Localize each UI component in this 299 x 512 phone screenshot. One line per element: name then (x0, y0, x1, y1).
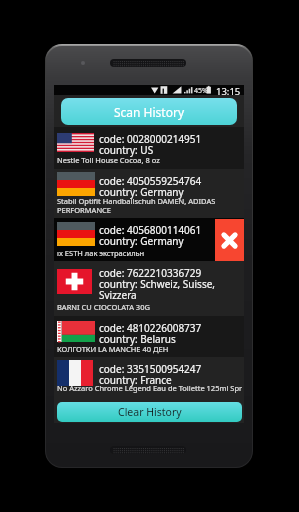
staticText: country: Germany (99, 234, 184, 248)
staticText: 13:15 (216, 85, 241, 95)
button[interactable]: code: 4810226008737 (54, 316, 244, 357)
button[interactable]: Delete entry (215, 219, 244, 261)
button[interactable]: code: 4056800114061 (54, 218, 244, 261)
staticText: Stabil Optifit Handballschuh DAMEN, ADID… (57, 196, 216, 206)
staticText: 45% (194, 86, 208, 96)
staticText: country: US (99, 143, 154, 157)
staticText: No Azzaro Chrome Legend Eau de Toilette … (57, 383, 243, 393)
staticText: code: 4056800114061 (99, 223, 202, 237)
staticText: code: 3351500954247 (99, 362, 202, 376)
staticText: Svizzera (99, 288, 137, 302)
staticText: country: France (99, 373, 172, 387)
button[interactable]: code: 3351500954247 (54, 357, 244, 396)
staticText: country: Germany (99, 185, 184, 199)
staticText: code: 0028000214951 (99, 132, 202, 146)
staticText: Nestle Toll House Cocoa, 8 oz (57, 155, 160, 165)
staticText: code: 4810226008737 (99, 321, 202, 335)
staticText: code: 7622210336729 (99, 266, 202, 280)
staticText: country: Belarus (99, 332, 176, 346)
staticText: Scan History (114, 104, 185, 120)
staticText: Clear History (118, 405, 182, 419)
button[interactable]: Clear History (57, 402, 242, 422)
button[interactable]: code: 0028000214951 (54, 127, 244, 169)
staticText: BARNI CU CIOCOLATA 30G (57, 302, 150, 312)
staticText: code: 4050559254764 (99, 174, 202, 188)
staticText: ıx ESTH лак экстрасильн (57, 248, 145, 258)
button[interactable]: code: 7622210336729 (54, 261, 244, 316)
staticText: PERFORMANCE (57, 205, 111, 215)
button[interactable]: Scan History (61, 98, 237, 125)
button[interactable]: code: 4050559254764 (54, 169, 244, 219)
staticText: КОЛГОТКИ LA MANCHE 40 ДЕН (57, 344, 169, 354)
staticText: country: Schweiz, Suisse, (99, 277, 216, 291)
